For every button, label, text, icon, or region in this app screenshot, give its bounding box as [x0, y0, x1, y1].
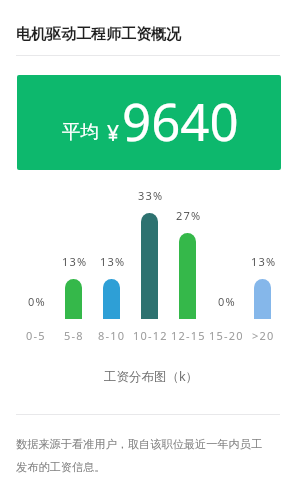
staticText: 5-8	[64, 328, 84, 343]
button[interactable]: 0-5k 区间 0%	[16, 194, 54, 343]
staticText: ¥	[107, 119, 120, 148]
button[interactable]: 5-8k 区间 13%	[54, 194, 92, 343]
staticText: 平均	[62, 120, 100, 143]
staticText: 电机驱动工程师工资概况	[16, 25, 181, 44]
staticText: 12-15	[171, 328, 206, 343]
staticText: 33%	[138, 188, 164, 203]
staticText: 10-12	[133, 328, 168, 343]
staticText: 15-20	[209, 328, 244, 343]
staticText: 数据来源于看准用户，取自该职位最近一年内员工发布的工资信息。	[16, 437, 268, 475]
staticText: 13%	[100, 254, 126, 269]
button[interactable]: 电机驱动工程师工资概况	[0, 25, 304, 44]
staticText: 8-10	[98, 328, 126, 343]
staticText: 工资分布图（k）	[19, 368, 283, 385]
button[interactable]: >20k 区间 13%	[244, 194, 280, 343]
button[interactable]: 12-15k 区间 27%	[168, 194, 206, 343]
button[interactable]: 10-12k 区间 33%	[130, 194, 168, 343]
staticText: 0%	[218, 294, 236, 309]
button[interactable]: 平均	[17, 75, 281, 170]
staticText: 9640	[122, 86, 239, 155]
staticText: 27%	[176, 208, 202, 223]
staticText: 13%	[62, 254, 88, 269]
staticText: >20	[252, 328, 275, 343]
staticText: 13%	[251, 254, 277, 269]
button[interactable]: 8-10k 区间 13%	[92, 194, 130, 343]
button[interactable]: 15-20k 区间 0%	[206, 194, 244, 343]
staticText: 0-5	[26, 328, 46, 343]
staticText: 0%	[28, 294, 46, 309]
